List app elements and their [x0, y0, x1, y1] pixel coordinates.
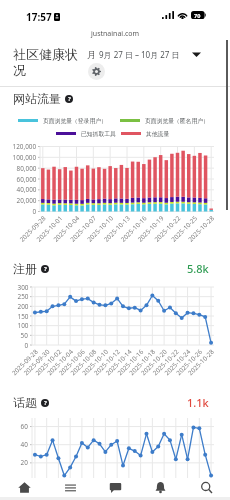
staticText: 页面浏览量（登录用户）: [43, 117, 107, 124]
button[interactable]: 消息: [94, 478, 136, 497]
staticText: 话题: [13, 395, 37, 410]
staticText: 月: [87, 49, 96, 60]
staticText: justnainai.com: [91, 29, 140, 39]
button[interactable]: 帮助: [41, 399, 49, 407]
staticText: ?: [44, 399, 47, 407]
staticText: 1.1k: [187, 395, 209, 410]
button[interactable]: 帮助: [65, 95, 73, 103]
staticText: 网站流量: [13, 91, 61, 106]
staticText: ?: [68, 95, 71, 103]
staticText: 9月 27 日 – 10月 27 日: [99, 49, 180, 60]
button[interactable]: 菜单: [49, 478, 91, 497]
button[interactable]: 主页: [3, 478, 45, 497]
button[interactable]: 设置: [88, 63, 105, 80]
staticText: 已知抓取工具: [81, 130, 116, 137]
staticText: ?: [44, 265, 47, 273]
staticText: 社区健康状况: [13, 46, 89, 79]
staticText: 页面浏览量（匿名用户）: [145, 117, 209, 124]
button[interactable]: 通知: [139, 478, 181, 497]
button[interactable]: 搜索: [185, 478, 227, 497]
staticText: 5.8k: [187, 261, 209, 276]
staticText: 70: [194, 12, 201, 19]
staticText: 注册: [13, 261, 37, 276]
staticText: 其他流量: [146, 130, 170, 137]
button[interactable]: 帮助: [41, 265, 49, 273]
staticText: 17:57: [26, 10, 52, 24]
